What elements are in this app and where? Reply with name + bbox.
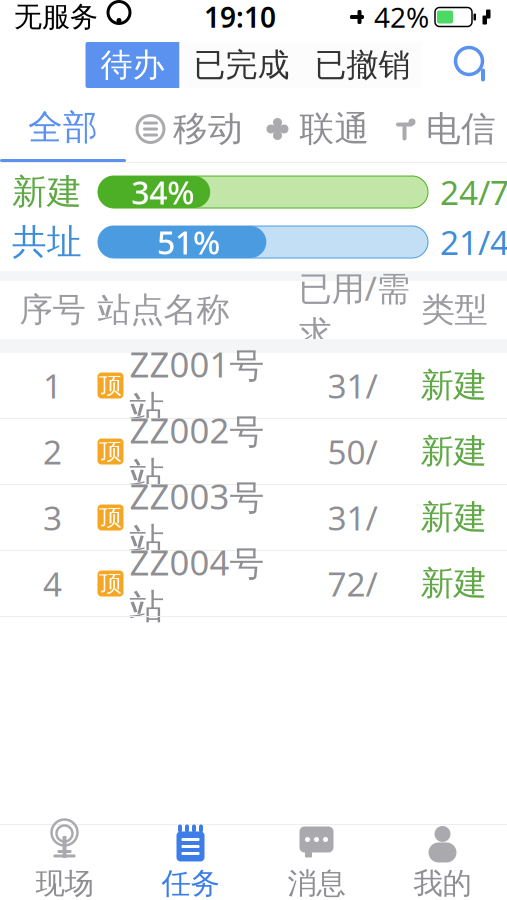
button[interactable]: 1 <box>0 353 507 418</box>
button[interactable]: 移动 <box>126 96 253 162</box>
button[interactable]: 已撤销 <box>303 42 421 88</box>
staticText: 2 <box>43 429 62 474</box>
staticText: 电信 <box>426 108 496 150</box>
staticText: 新建 <box>420 497 486 538</box>
button[interactable]: 搜索 <box>445 37 501 93</box>
staticText: 顶 <box>99 438 122 465</box>
staticText: 共址 <box>12 221 82 263</box>
staticText: 19:10 <box>204 0 276 36</box>
button[interactable]: 3 <box>0 485 507 550</box>
staticText: ZZ001号站 <box>129 341 264 430</box>
button[interactable]: 4 <box>0 551 507 616</box>
staticText: ZZ003号站 <box>129 473 264 562</box>
staticText: 类型 <box>421 289 487 330</box>
staticText: 顶 <box>99 504 122 531</box>
staticText: 3 <box>43 495 62 540</box>
button[interactable]: 电信 <box>380 96 507 162</box>
button[interactable]: 2 <box>0 419 507 484</box>
staticText: 现场 <box>35 865 93 900</box>
staticText: ZZ002号站 <box>129 407 264 496</box>
staticText: 任务 <box>161 865 219 900</box>
staticText: 50/ <box>327 429 377 474</box>
staticText: 已完成 <box>193 45 289 85</box>
staticText: 无服务 <box>14 0 98 34</box>
staticText: 联通 <box>299 108 369 150</box>
staticText: 已用/需求... <box>298 266 409 354</box>
staticText: 新建 <box>12 171 82 213</box>
staticText: 待办 <box>100 45 164 85</box>
staticText: 72/ <box>327 561 377 606</box>
staticText: 全部 <box>28 106 98 149</box>
staticText: 顶 <box>99 372 122 399</box>
staticText: 新建 <box>420 365 486 406</box>
button[interactable]: 联通 <box>253 96 380 162</box>
staticText: 42% <box>374 0 429 36</box>
staticText: 站点名称 <box>97 289 229 330</box>
button[interactable]: 现场 <box>1 825 127 900</box>
staticText: 已撤销 <box>314 45 410 85</box>
staticText: 新建 <box>420 431 486 472</box>
staticText: 1 <box>43 363 62 408</box>
staticText: ZZ004号站 <box>129 539 264 628</box>
staticText: 21/41 <box>440 220 507 264</box>
staticText: 51% <box>157 221 220 263</box>
staticText: 新建 <box>420 563 486 604</box>
button[interactable]: 待办 <box>85 42 179 88</box>
staticText: 顶 <box>99 570 122 597</box>
button[interactable]: 消息 <box>253 825 379 900</box>
staticText: 31/ <box>327 495 377 540</box>
staticText: 移动 <box>173 108 243 150</box>
staticText: 我的 <box>413 865 471 900</box>
button[interactable]: 我的 <box>379 825 505 900</box>
staticText: 24/70 <box>440 170 507 214</box>
button[interactable]: 全部 <box>0 96 126 162</box>
staticText: 4 <box>43 561 62 606</box>
button[interactable]: 已完成 <box>179 42 303 88</box>
button[interactable]: 任务 <box>127 825 253 900</box>
staticText: 序号 <box>19 289 85 330</box>
staticText: 消息 <box>287 865 345 900</box>
staticText: 34% <box>131 171 194 213</box>
staticText: 31/ <box>327 363 377 408</box>
